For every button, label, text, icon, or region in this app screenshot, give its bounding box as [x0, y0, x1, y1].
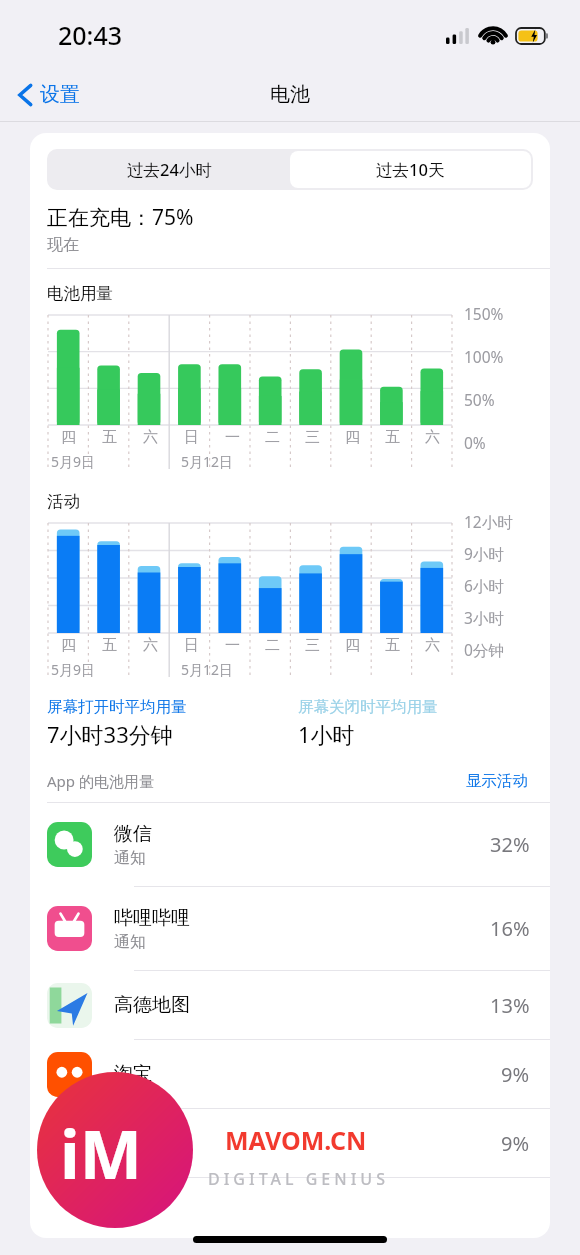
staticText: 5月9日	[51, 660, 96, 679]
staticText: 100%	[464, 346, 504, 367]
staticText: 五	[385, 428, 400, 447]
staticText: 屏幕关闭时平均用量	[298, 697, 438, 717]
staticText: 通知	[114, 932, 146, 952]
staticText: 50%	[464, 389, 495, 410]
staticText: 淘宝	[114, 1062, 152, 1086]
staticText: 5月12日	[181, 660, 234, 679]
staticText: 6小时	[464, 575, 504, 596]
staticText: 六	[425, 636, 440, 655]
staticText: 32%	[490, 831, 530, 858]
staticText: 哔哩哔哩	[114, 906, 190, 930]
staticText: 3小时	[464, 607, 504, 628]
staticText: 电池	[270, 82, 310, 107]
staticText: 现在	[47, 235, 79, 255]
staticText: 7小时33分钟	[47, 719, 173, 749]
button[interactable]: 微信	[30, 803, 550, 886]
staticText: 9%	[501, 1061, 530, 1088]
staticText: 六	[143, 428, 158, 447]
button[interactable]: 哔哩哔哩	[30, 887, 550, 970]
staticText: 过去10天	[376, 158, 445, 181]
staticText: 0%	[464, 432, 486, 453]
staticText: 四	[345, 428, 360, 447]
button[interactable]: 淘宝	[30, 1040, 550, 1108]
staticText: 显示活动	[466, 771, 528, 791]
button[interactable]: 设置	[12, 78, 86, 111]
staticText: 5月9日	[51, 452, 96, 471]
staticText: 五	[102, 428, 117, 447]
staticText: 三	[305, 428, 320, 447]
staticText: MAVOM.CN	[225, 1123, 367, 1157]
staticText: 四	[61, 636, 76, 655]
staticText: 通知	[114, 848, 146, 868]
staticText: 16%	[490, 915, 530, 942]
button[interactable]: 过去24小时	[49, 151, 290, 188]
button[interactable]: 过去10天	[290, 151, 531, 188]
staticText: 日	[184, 636, 199, 655]
staticText: 六	[143, 636, 158, 655]
staticText: 活动	[47, 491, 80, 512]
staticText: 正在充电：75%	[47, 203, 194, 232]
staticText: 三	[305, 636, 320, 655]
staticText: 13%	[490, 992, 530, 1019]
staticText: 设置	[40, 82, 80, 107]
staticText: DIGITAL GENIUS	[208, 1168, 389, 1190]
staticText: 二	[265, 636, 280, 655]
staticText: 150%	[464, 303, 504, 324]
staticText: 二	[265, 428, 280, 447]
staticText: 四	[345, 636, 360, 655]
staticText: 一	[225, 428, 240, 447]
staticText: 12小时	[464, 511, 513, 532]
staticText: 20:43	[58, 18, 123, 52]
staticText: 电池用量	[47, 283, 113, 304]
staticText: 屏幕打开时平均用量	[47, 697, 187, 717]
button[interactable]: 停车场	[30, 1109, 550, 1177]
staticText: 1小时	[298, 719, 355, 749]
staticText: 9%	[501, 1130, 530, 1157]
staticText: 五	[102, 636, 117, 655]
staticText: 微信	[114, 822, 152, 846]
staticText: 四	[61, 428, 76, 447]
staticText: 5月12日	[181, 452, 234, 471]
staticText: 日	[184, 428, 199, 447]
staticText: 9小时	[464, 543, 504, 564]
staticText: 六	[425, 428, 440, 447]
staticText: 过去24小时	[127, 158, 212, 181]
staticText: 高德地图	[114, 993, 190, 1017]
button[interactable]: 显示活动	[464, 769, 530, 793]
staticText: 五	[385, 636, 400, 655]
staticText: 0分钟	[464, 639, 504, 660]
staticText: App 的电池用量	[47, 771, 154, 791]
staticText: 一	[225, 636, 240, 655]
button[interactable]: 高德地图	[30, 971, 550, 1039]
staticText: iM	[60, 1108, 142, 1198]
staticText: 停车场	[114, 1131, 171, 1155]
